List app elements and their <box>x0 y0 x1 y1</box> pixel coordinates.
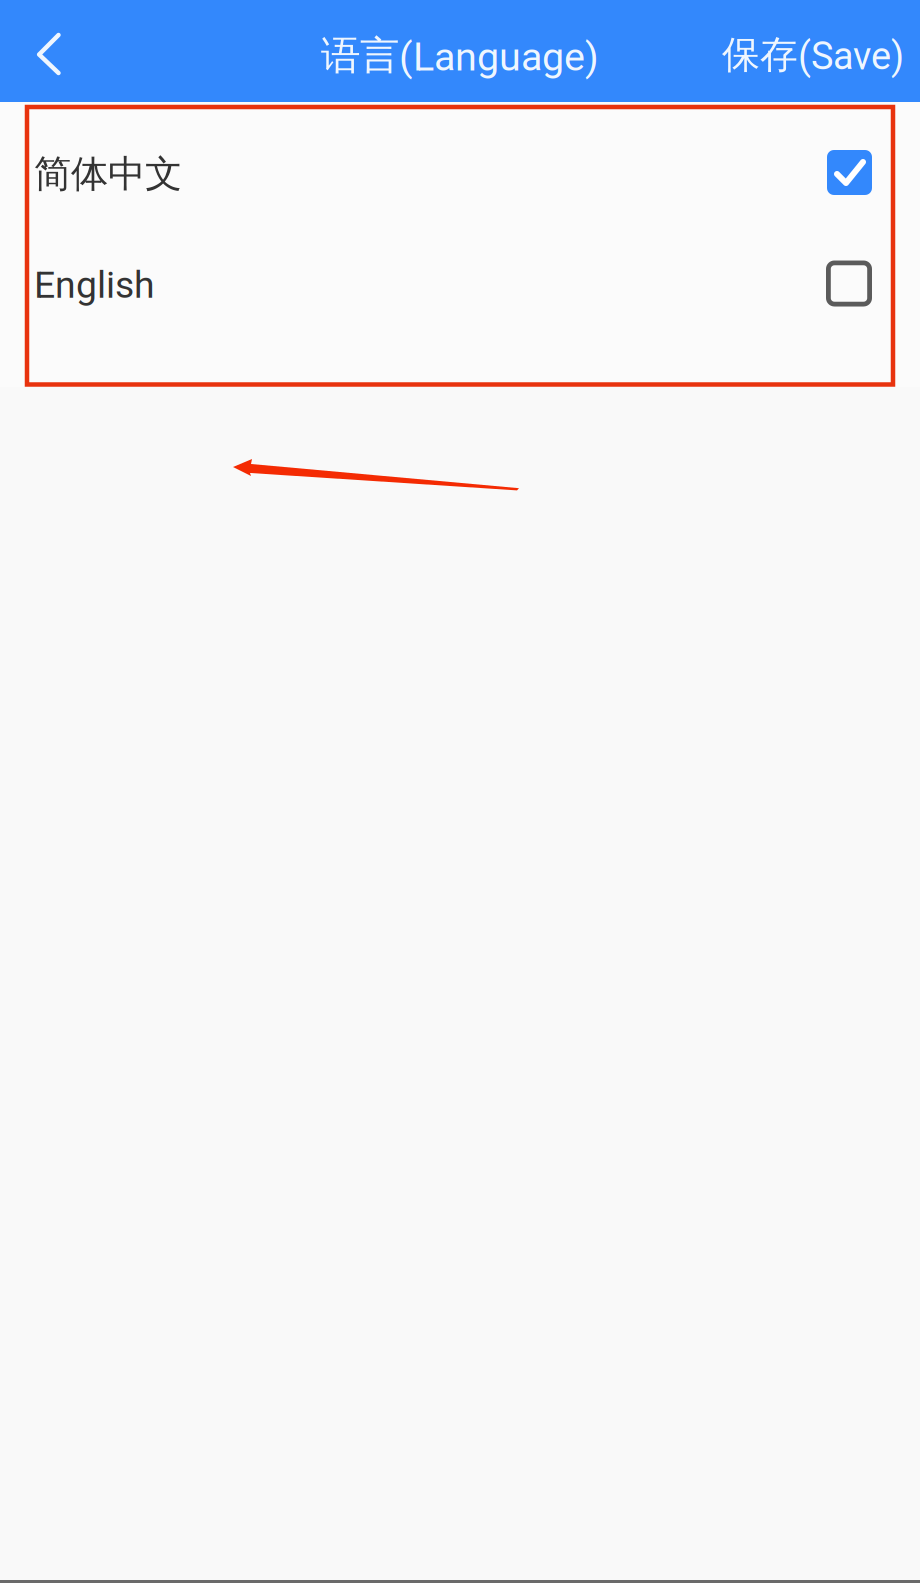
staticText: 保存(Save) <box>722 31 904 79</box>
button[interactable]: 保存(Save) <box>722 0 920 102</box>
button[interactable]: 简体中文 <box>0 117 920 228</box>
staticText: 简体中文 <box>34 150 182 197</box>
staticText: 语言(Language) <box>321 31 599 80</box>
staticText: English <box>34 263 155 307</box>
button[interactable]: English <box>0 228 920 339</box>
button[interactable]: Back <box>0 0 98 102</box>
